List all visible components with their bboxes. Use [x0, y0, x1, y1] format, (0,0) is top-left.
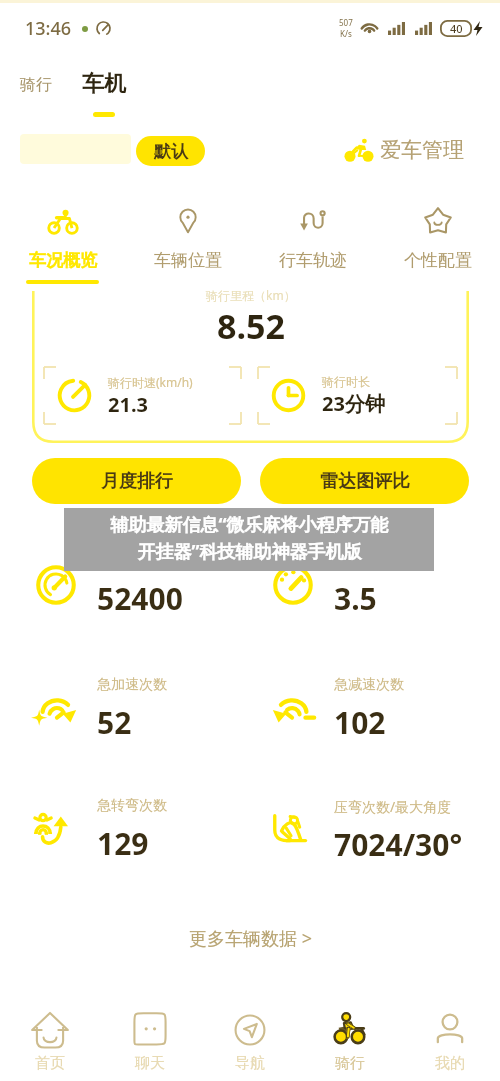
staticText: 我的	[435, 1054, 465, 1073]
staticText: 总里程（km）	[97, 551, 188, 570]
button[interactable]: 个性配置	[375, 205, 500, 280]
button[interactable]: 总里程（km）	[32, 551, 269, 619]
staticText: 车机	[82, 70, 126, 98]
staticText: 行车轨迹	[279, 250, 347, 271]
button[interactable]: 行车轨迹	[250, 205, 375, 280]
button[interactable]: 急加速次数	[32, 676, 269, 743]
staticText: 7024/30°	[334, 824, 463, 865]
button[interactable]: 车机	[80, 70, 128, 117]
button[interactable]: 更多车辆数据 >	[179, 920, 322, 957]
staticText: 导航	[235, 1054, 265, 1073]
staticText: 8.52	[217, 303, 285, 349]
button[interactable]: 首页	[0, 991, 100, 1073]
staticText: 13:46	[25, 16, 72, 41]
staticText: 默认	[154, 141, 188, 162]
staticText: 更多车辆数据 >	[189, 926, 312, 951]
staticText: 40	[450, 21, 463, 36]
staticText: 聊天	[135, 1054, 165, 1073]
staticText: 102	[334, 702, 386, 743]
button[interactable]: 急减速次数	[269, 676, 469, 743]
staticText: 雷达图评比	[320, 470, 410, 493]
button[interactable]: 车辆位置	[125, 205, 250, 280]
button[interactable]: 车况概览	[0, 205, 125, 284]
button[interactable]: 导航	[200, 991, 300, 1073]
button[interactable]: 雷达图评比	[260, 458, 469, 504]
button[interactable]: 爱车管理	[343, 136, 465, 164]
staticText: 首页	[35, 1054, 65, 1073]
staticText: 骑行时长	[322, 374, 370, 389]
staticText: 23分钟	[322, 390, 385, 417]
button[interactable]: 我的	[400, 991, 500, 1073]
staticText: 3.5	[334, 578, 377, 619]
staticText: 骑行里程（km）	[206, 287, 296, 303]
staticText: 压弯次数/最大角度	[334, 797, 452, 816]
staticText: 急转弯次数	[97, 797, 167, 815]
button[interactable]: 压弯次数/最大角度	[269, 797, 469, 865]
staticText: 52400	[97, 578, 183, 619]
staticText: 辅助最新信息“微乐麻将小程序万能 开挂器”科技辅助神器手机版	[110, 512, 389, 564]
staticText: 急加速次数	[97, 676, 167, 694]
button[interactable]: 月度排行	[32, 458, 241, 504]
staticText: 507	[339, 17, 353, 28]
staticText: 车辆位置	[154, 250, 222, 271]
staticText: 百公里油耗（L）	[334, 551, 440, 570]
staticText: 骑行	[20, 75, 52, 95]
button[interactable]: 骑行	[300, 991, 400, 1073]
button[interactable]: 骑行	[17, 73, 55, 97]
staticText: K/s	[340, 28, 352, 39]
staticText: 急减速次数	[334, 676, 404, 694]
button[interactable]: 默认	[136, 136, 205, 166]
staticText: 52	[97, 702, 132, 743]
staticText: 骑行时速(km/h)	[108, 374, 193, 390]
staticText: 车况概览	[29, 250, 97, 271]
button[interactable]: 急转弯次数	[32, 797, 269, 864]
button[interactable]: 百公里油耗（L）	[269, 551, 469, 619]
staticText: 129	[97, 823, 149, 864]
staticText: 21.3	[108, 391, 148, 418]
staticText: 骑行	[335, 1054, 365, 1073]
button[interactable]: 聊天	[100, 991, 200, 1073]
staticText: 月度排行	[101, 470, 173, 493]
staticText: 个性配置	[404, 250, 472, 271]
button[interactable]: 骑行时长	[258, 367, 457, 424]
button[interactable]: 骑行时速(km/h)	[44, 367, 241, 424]
staticText: 爱车管理	[380, 137, 464, 163]
